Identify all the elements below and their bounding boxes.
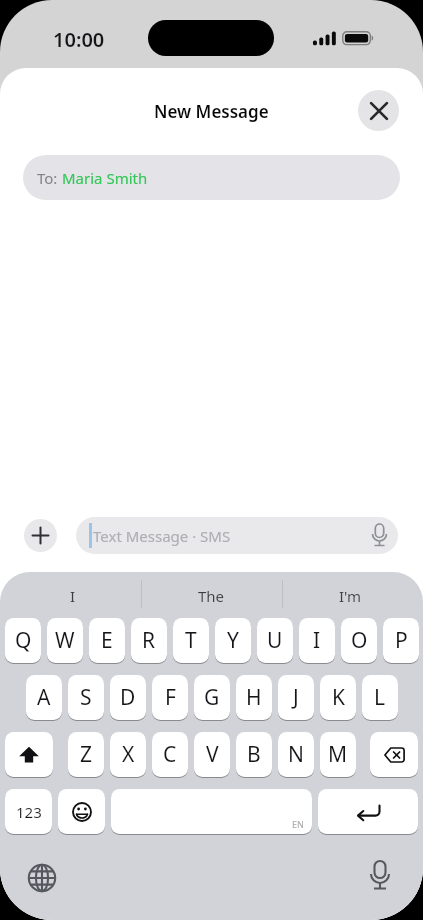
button[interactable] [370, 732, 418, 777]
button[interactable]: Text Message · SMS [76, 517, 398, 554]
button[interactable]: Z [68, 732, 104, 777]
staticText: V [206, 740, 219, 769]
staticText: X [122, 740, 135, 769]
staticText: W [55, 626, 75, 655]
button[interactable]: I [20, 583, 126, 609]
button[interactable] [358, 90, 399, 131]
staticText: K [332, 683, 345, 712]
button[interactable]: D [110, 675, 146, 720]
staticText: D [120, 683, 136, 712]
button[interactable]: B [236, 732, 272, 777]
button[interactable]: V [194, 732, 230, 777]
button[interactable]: X [110, 732, 146, 777]
staticText: B [247, 740, 261, 769]
staticText: Text Message · SMS [93, 526, 231, 546]
staticText: J [293, 683, 299, 712]
staticText: G [204, 683, 220, 712]
button[interactable]: N [278, 732, 314, 777]
staticText: The [198, 586, 225, 606]
staticText: EN [292, 818, 304, 830]
staticText: 10:00 [53, 26, 105, 52]
staticText: T [185, 626, 197, 655]
staticText: E [101, 626, 113, 655]
button[interactable]: G [194, 675, 230, 720]
button[interactable]: M [320, 732, 356, 777]
button[interactable]: Y [215, 618, 251, 663]
staticText: N [288, 740, 304, 769]
button[interactable]: C [152, 732, 188, 777]
staticText: Q [15, 626, 32, 655]
staticText: S [80, 683, 92, 712]
button[interactable]: I [299, 618, 335, 663]
staticText: L [374, 683, 386, 712]
staticText: O [351, 626, 368, 655]
button[interactable]: R [131, 618, 167, 663]
button[interactable]: O [341, 618, 377, 663]
button[interactable]: F [152, 675, 188, 720]
button[interactable]: W [47, 618, 83, 663]
button[interactable] [5, 732, 53, 777]
button[interactable]: J [278, 675, 314, 720]
staticText: H [246, 683, 262, 712]
button[interactable]: K [320, 675, 356, 720]
staticText: P [395, 626, 408, 655]
staticText: R [142, 626, 156, 655]
staticText: I [313, 626, 321, 655]
staticText: F [165, 683, 176, 712]
staticText: I [70, 586, 76, 606]
button[interactable]: H [236, 675, 272, 720]
button[interactable]: To: [23, 155, 400, 200]
staticText: Maria Smith [62, 168, 148, 188]
staticText: To: [37, 168, 62, 188]
button[interactable] [24, 519, 57, 552]
button[interactable]: I'm [297, 583, 403, 609]
button[interactable]: P [383, 618, 419, 663]
staticText: Z [80, 740, 93, 769]
button[interactable] [352, 848, 408, 904]
staticText: U [267, 626, 283, 655]
button[interactable]: 123 [5, 789, 52, 834]
button[interactable] [58, 789, 105, 834]
button[interactable] [14, 850, 70, 906]
staticText: A [37, 683, 51, 712]
button[interactable]: L [362, 675, 398, 720]
staticText: M [328, 740, 348, 769]
button[interactable]: S [68, 675, 104, 720]
button[interactable]: A [26, 675, 62, 720]
button[interactable]: E [89, 618, 125, 663]
button[interactable]: Q [5, 618, 41, 663]
staticText: New Message [154, 100, 269, 123]
button[interactable]: U [257, 618, 293, 663]
button[interactable]: T [173, 618, 209, 663]
staticText: 123 [16, 802, 42, 822]
staticText: I'm [339, 586, 362, 606]
button[interactable]: The [158, 583, 264, 609]
staticText: Y [227, 626, 239, 655]
button[interactable] [318, 789, 418, 834]
button[interactable]: EN [111, 789, 312, 834]
staticText: C [163, 740, 177, 769]
